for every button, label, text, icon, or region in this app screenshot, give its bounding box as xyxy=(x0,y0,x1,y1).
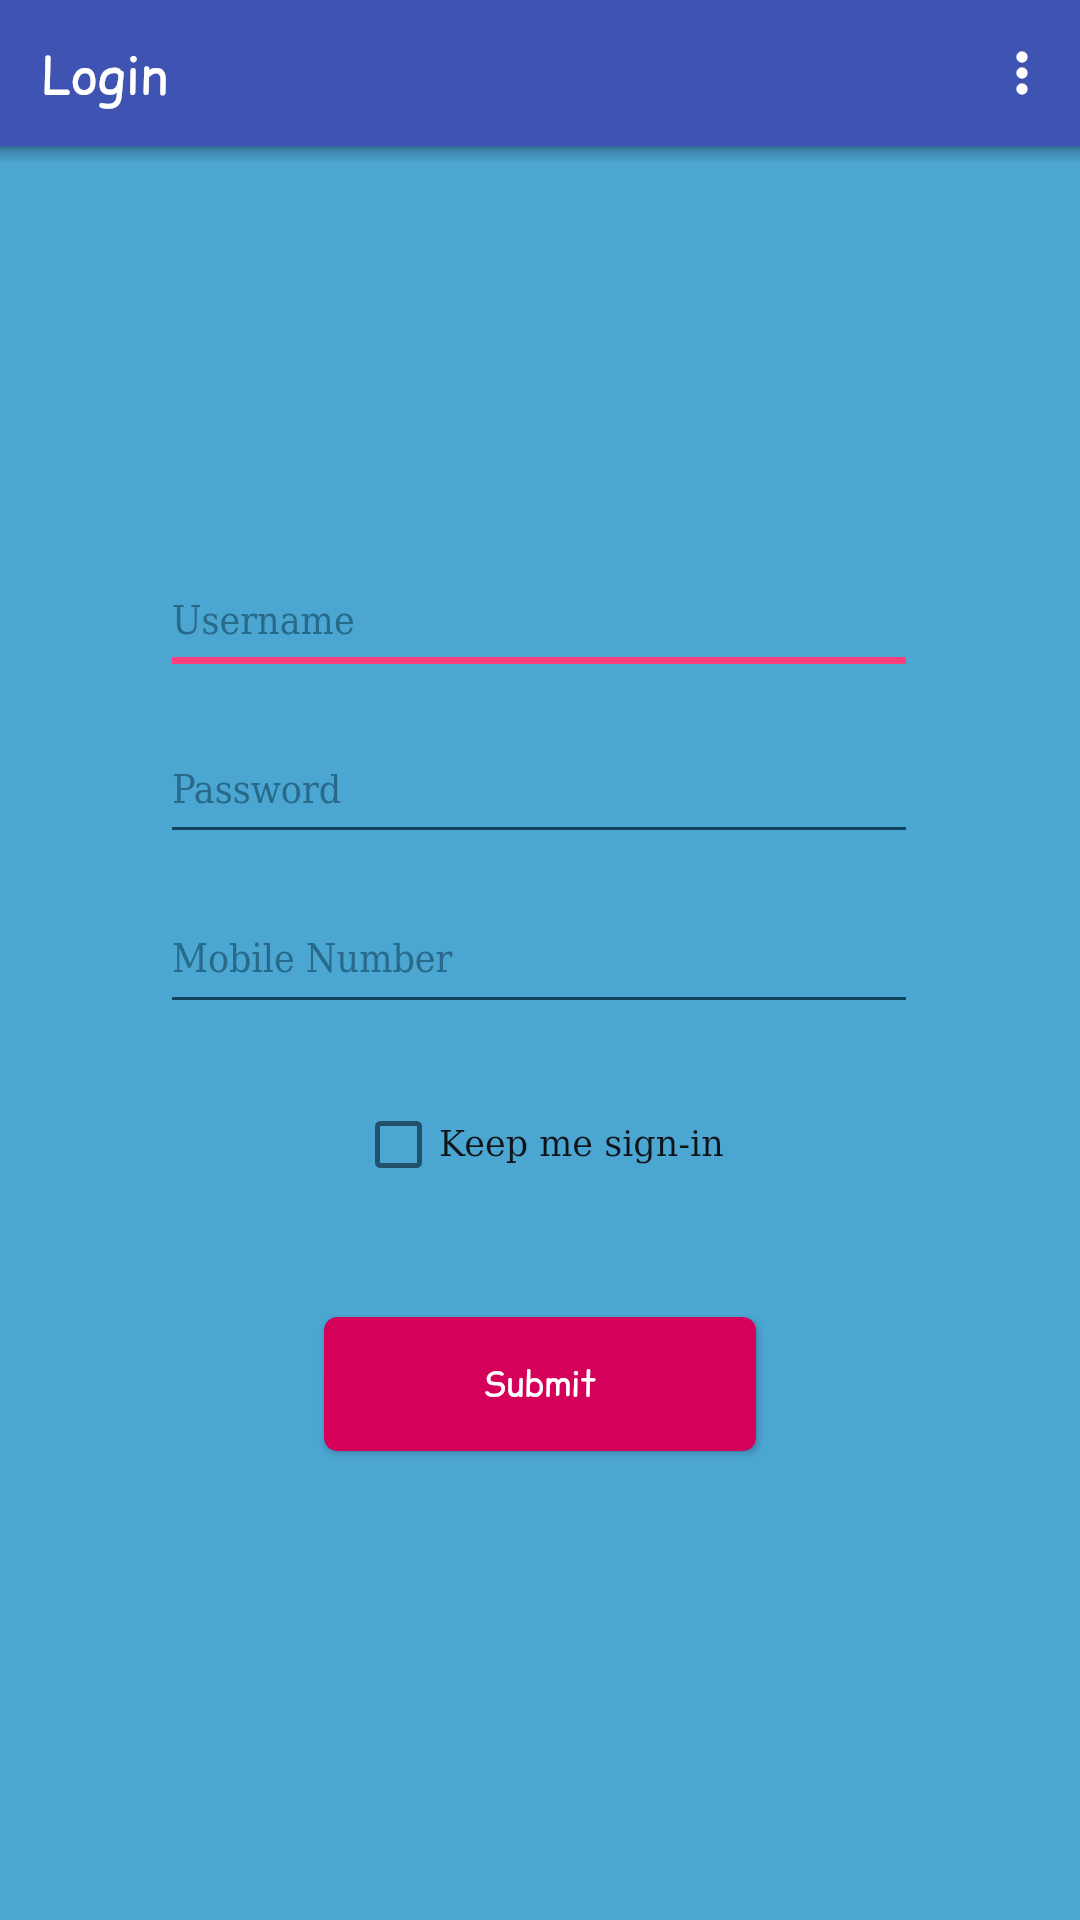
staticText: Login xyxy=(42,39,168,112)
staticText: Mobile Number xyxy=(172,936,453,981)
staticText: Password xyxy=(172,767,342,812)
staticText: Keep me sign-in xyxy=(439,1124,724,1165)
button[interactable]: Keep me sign-in xyxy=(373,1119,727,1171)
button[interactable]: Password xyxy=(172,745,906,830)
staticText: Username xyxy=(172,598,355,643)
staticText: Submit xyxy=(483,1360,597,1407)
button[interactable]: More options xyxy=(974,25,1070,121)
button[interactable]: Username xyxy=(172,576,906,664)
button[interactable]: Mobile Number xyxy=(172,914,906,1000)
button[interactable]: Submit xyxy=(324,1317,756,1451)
